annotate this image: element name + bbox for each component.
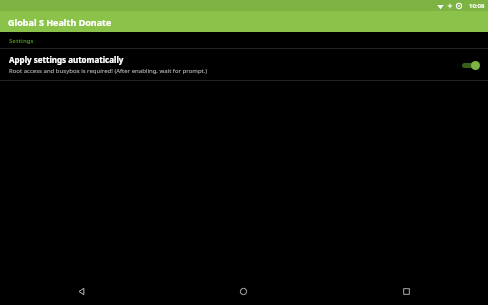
staticText: Global S Health Donate (8, 16, 112, 28)
staticText: Settings (9, 37, 34, 45)
button[interactable]: Recents (325, 278, 488, 305)
staticText: Apply settings automatically (9, 54, 124, 65)
button[interactable]: Back (0, 278, 162, 305)
staticText: Root access and busybox is required! (Af… (9, 67, 208, 75)
staticText: 10:08 (469, 2, 485, 10)
button[interactable]: Home (162, 278, 325, 305)
button[interactable]: Apply settings automatically toggle (460, 59, 480, 71)
button[interactable]: Apply settings automatically (0, 49, 488, 80)
